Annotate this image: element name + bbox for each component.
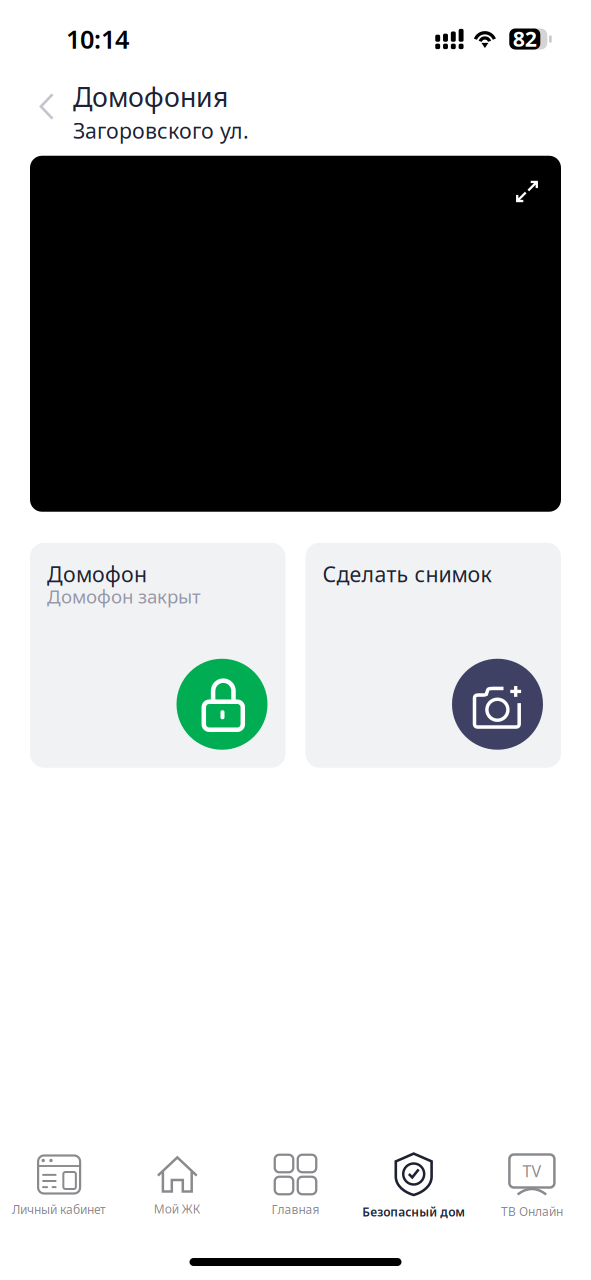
button[interactable]: Главная bbox=[236, 1154, 355, 1217]
staticText: Сделать снимок bbox=[322, 560, 491, 588]
staticText: 82 bbox=[513, 24, 537, 53]
staticText: 10:14 bbox=[66, 22, 129, 56]
button[interactable]: Домофон bbox=[30, 543, 285, 768]
button[interactable]: Личный кабинет bbox=[0, 1154, 118, 1217]
staticText: Безопасный дом bbox=[362, 1204, 465, 1220]
staticText: TV bbox=[522, 1160, 541, 1182]
staticText: Домофония bbox=[73, 79, 228, 114]
staticText: Мой ЖК bbox=[154, 1201, 201, 1217]
button[interactable]: Безопасный дом bbox=[355, 1152, 473, 1220]
staticText: Главная bbox=[271, 1201, 319, 1217]
staticText: ТВ Онлайн bbox=[501, 1203, 563, 1219]
button[interactable]: Back bbox=[0, 78, 73, 130]
staticText: Домофон закрыт bbox=[47, 584, 201, 608]
staticText: Загоровского ул. bbox=[73, 116, 249, 145]
button[interactable]: Сделать снимок bbox=[305, 543, 561, 768]
button[interactable]: Fullscreen bbox=[500, 156, 561, 218]
staticText: Домофон bbox=[47, 560, 147, 588]
button[interactable]: Мой ЖК bbox=[118, 1155, 236, 1217]
staticText: Личный кабинет bbox=[12, 1201, 106, 1217]
button[interactable]: TV bbox=[473, 1152, 591, 1219]
